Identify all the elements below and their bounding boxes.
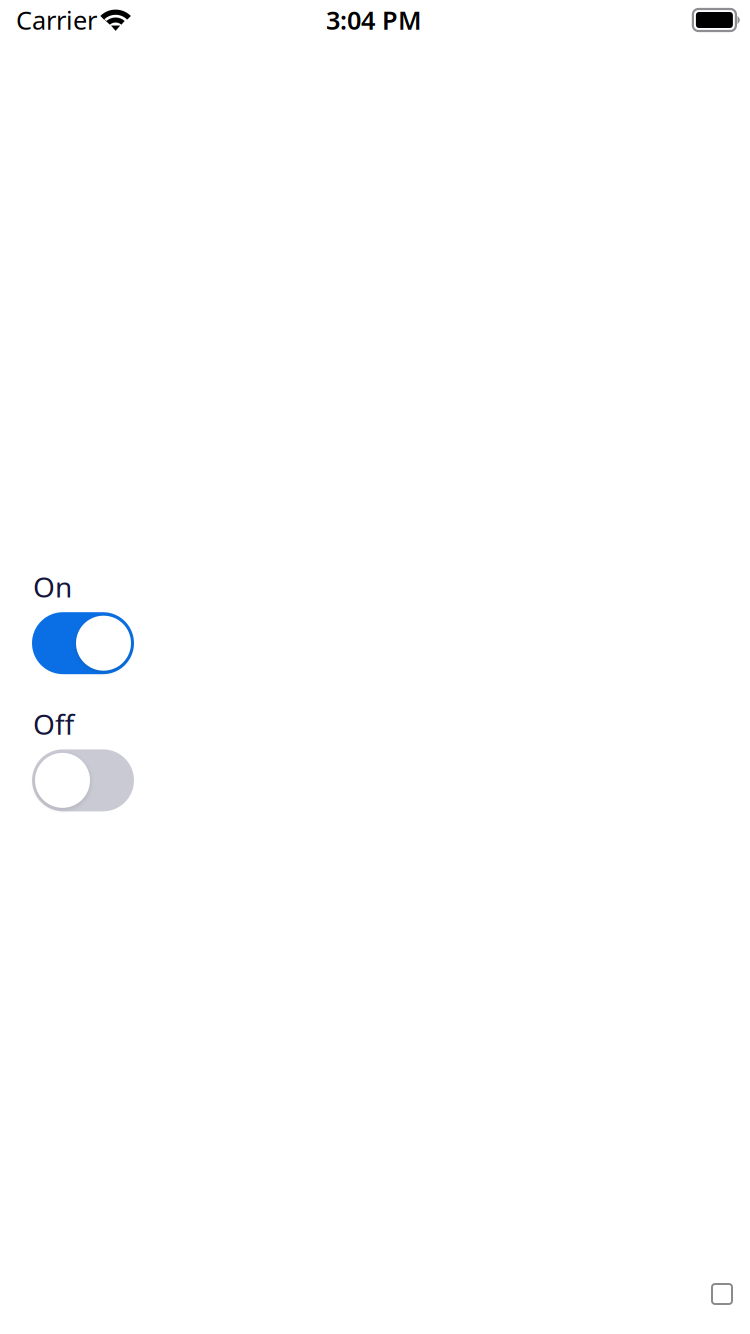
staticText: Off (33, 705, 74, 742)
button[interactable]: Select (712, 1284, 750, 1334)
button[interactable]: Switch off (32, 749, 134, 811)
staticText: On (33, 568, 72, 605)
staticText: 3:04 PM (326, 3, 422, 37)
button[interactable]: Switch on (32, 612, 134, 674)
staticText: Carrier (16, 3, 97, 37)
